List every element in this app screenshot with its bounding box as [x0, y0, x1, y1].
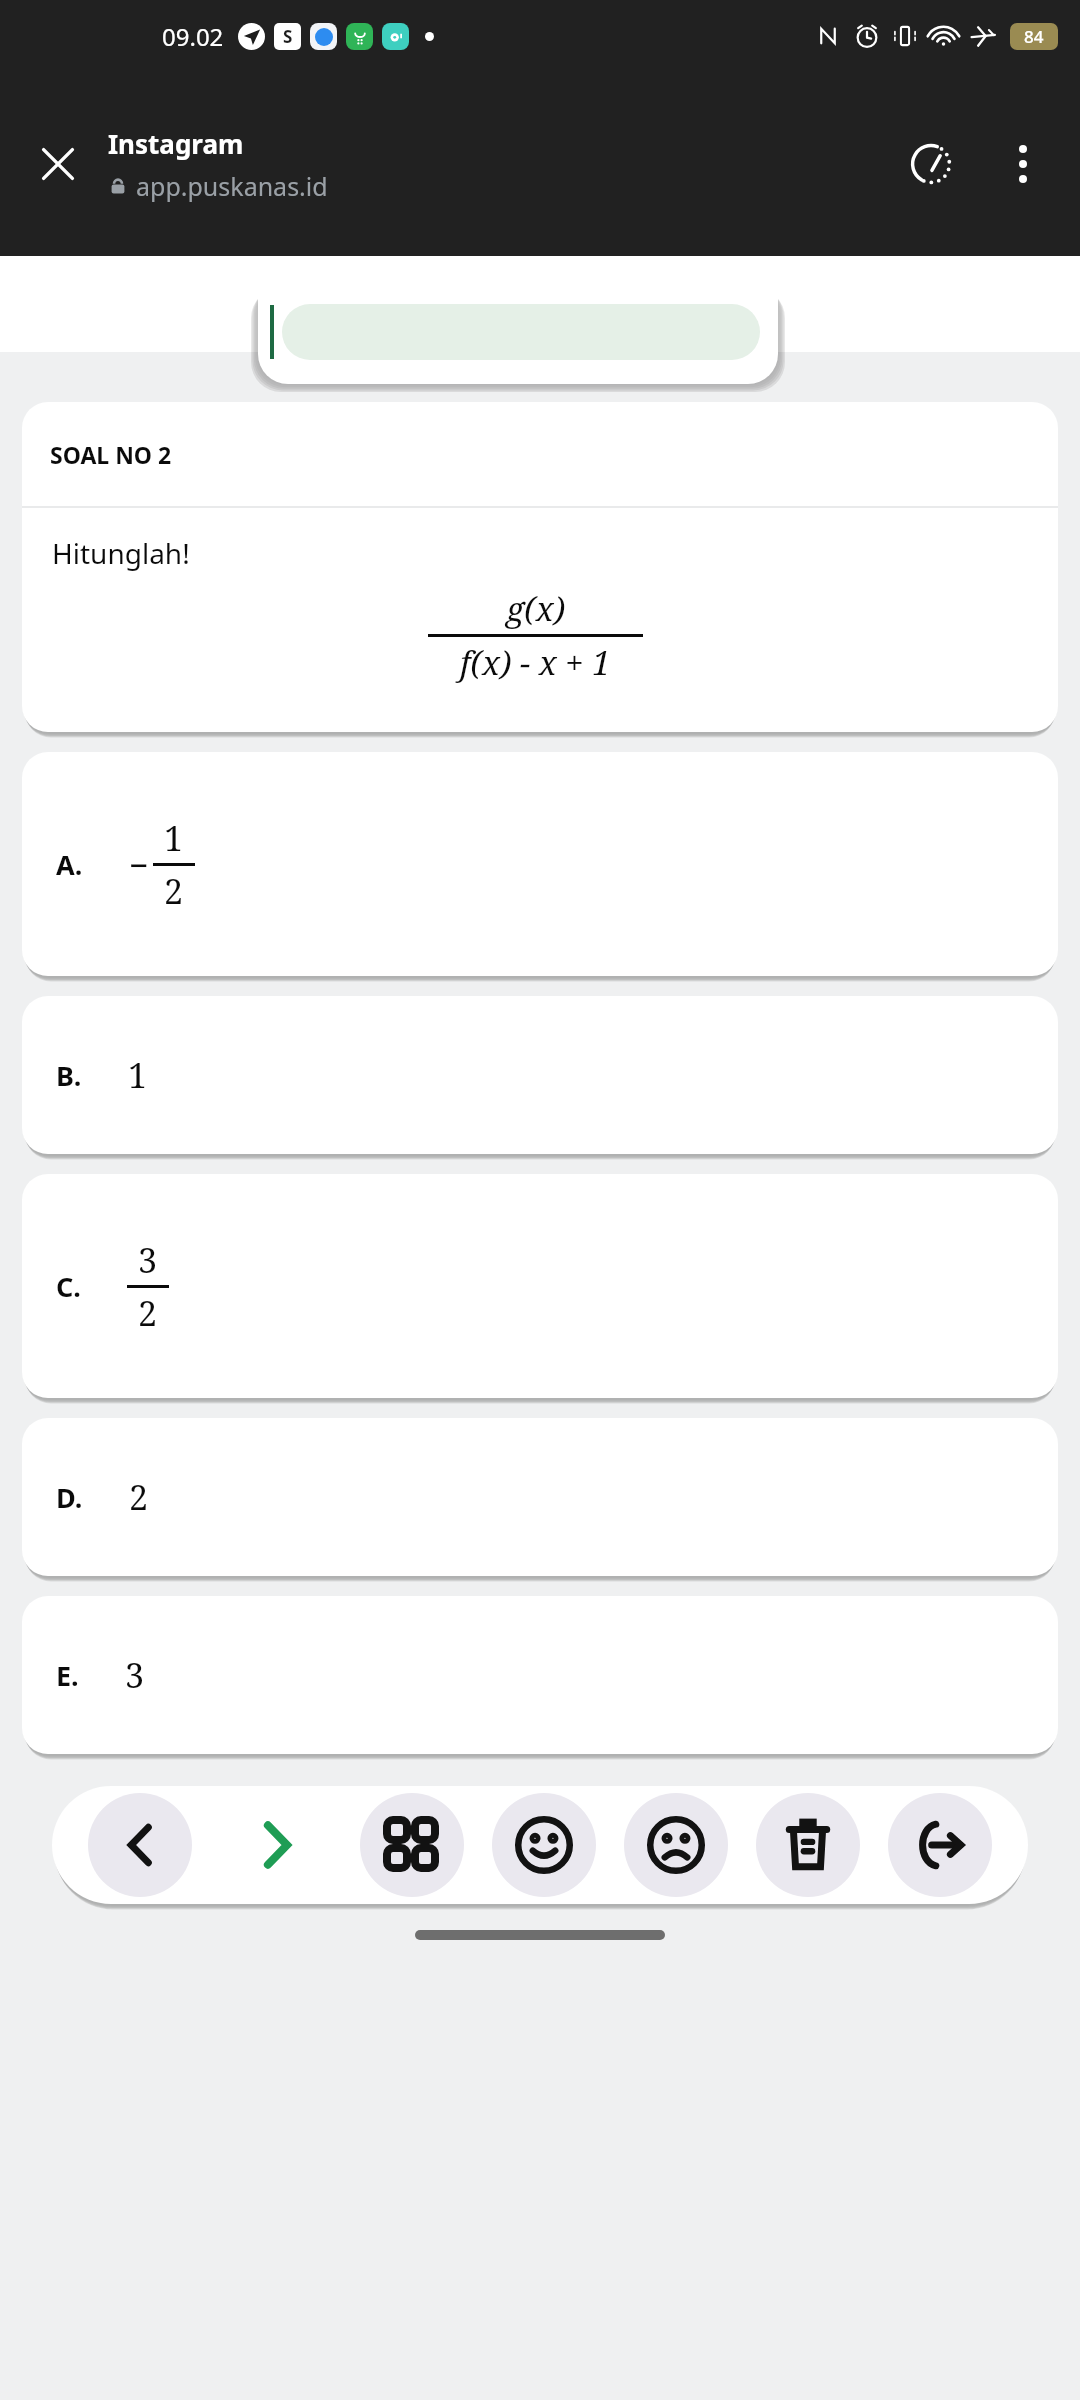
staticText: SOAL NO 2: [50, 439, 172, 470]
button[interactable]: A.: [22, 752, 1058, 976]
staticText: 1: [128, 1052, 148, 1098]
staticText: 3: [138, 1237, 158, 1283]
button[interactable]: E.: [22, 1596, 1058, 1754]
button[interactable]: Finish exam: [888, 1793, 992, 1897]
staticText: 09.02: [162, 20, 224, 53]
staticText: A.: [56, 846, 83, 883]
button[interactable]: Question list: [360, 1793, 464, 1897]
button[interactable]: Reload: [888, 121, 974, 207]
staticText: S: [283, 25, 293, 48]
staticText: app.puskanas.id: [136, 169, 328, 203]
staticText: 2: [164, 868, 184, 914]
button[interactable]: Close: [18, 124, 98, 204]
staticText: Hitunglah!: [52, 534, 190, 572]
staticText: 2: [129, 1474, 149, 1520]
staticText: g(x): [506, 586, 566, 631]
staticText: 2: [138, 1290, 158, 1336]
button[interactable]: C.: [22, 1174, 1058, 1398]
staticText: Instagram: [108, 126, 244, 161]
staticText: E.: [56, 1657, 79, 1694]
staticText: 1: [164, 815, 184, 861]
staticText: Matematika - OSP 2024: [0, 278, 1080, 319]
button[interactable]: Mark as confident: [492, 1793, 596, 1897]
button[interactable]: Clear answer: [756, 1793, 860, 1897]
staticText: 3: [125, 1652, 145, 1698]
staticText: −: [129, 842, 149, 888]
button[interactable]: B.: [22, 996, 1058, 1154]
staticText: D.: [56, 1479, 83, 1516]
button[interactable]: Next question: [220, 1789, 332, 1901]
button[interactable]: D.: [22, 1418, 1058, 1576]
staticText: C.: [56, 1268, 81, 1305]
button[interactable]: Previous question: [88, 1793, 192, 1897]
button[interactable]: More options: [988, 129, 1058, 199]
staticText: 59 MENIT 36 DETIK: [0, 352, 1080, 383]
button[interactable]: Mark as unsure: [624, 1793, 728, 1897]
staticText: f(x) − x + 1: [460, 640, 611, 685]
staticText: 84: [1024, 25, 1044, 48]
staticText: B.: [56, 1057, 82, 1094]
